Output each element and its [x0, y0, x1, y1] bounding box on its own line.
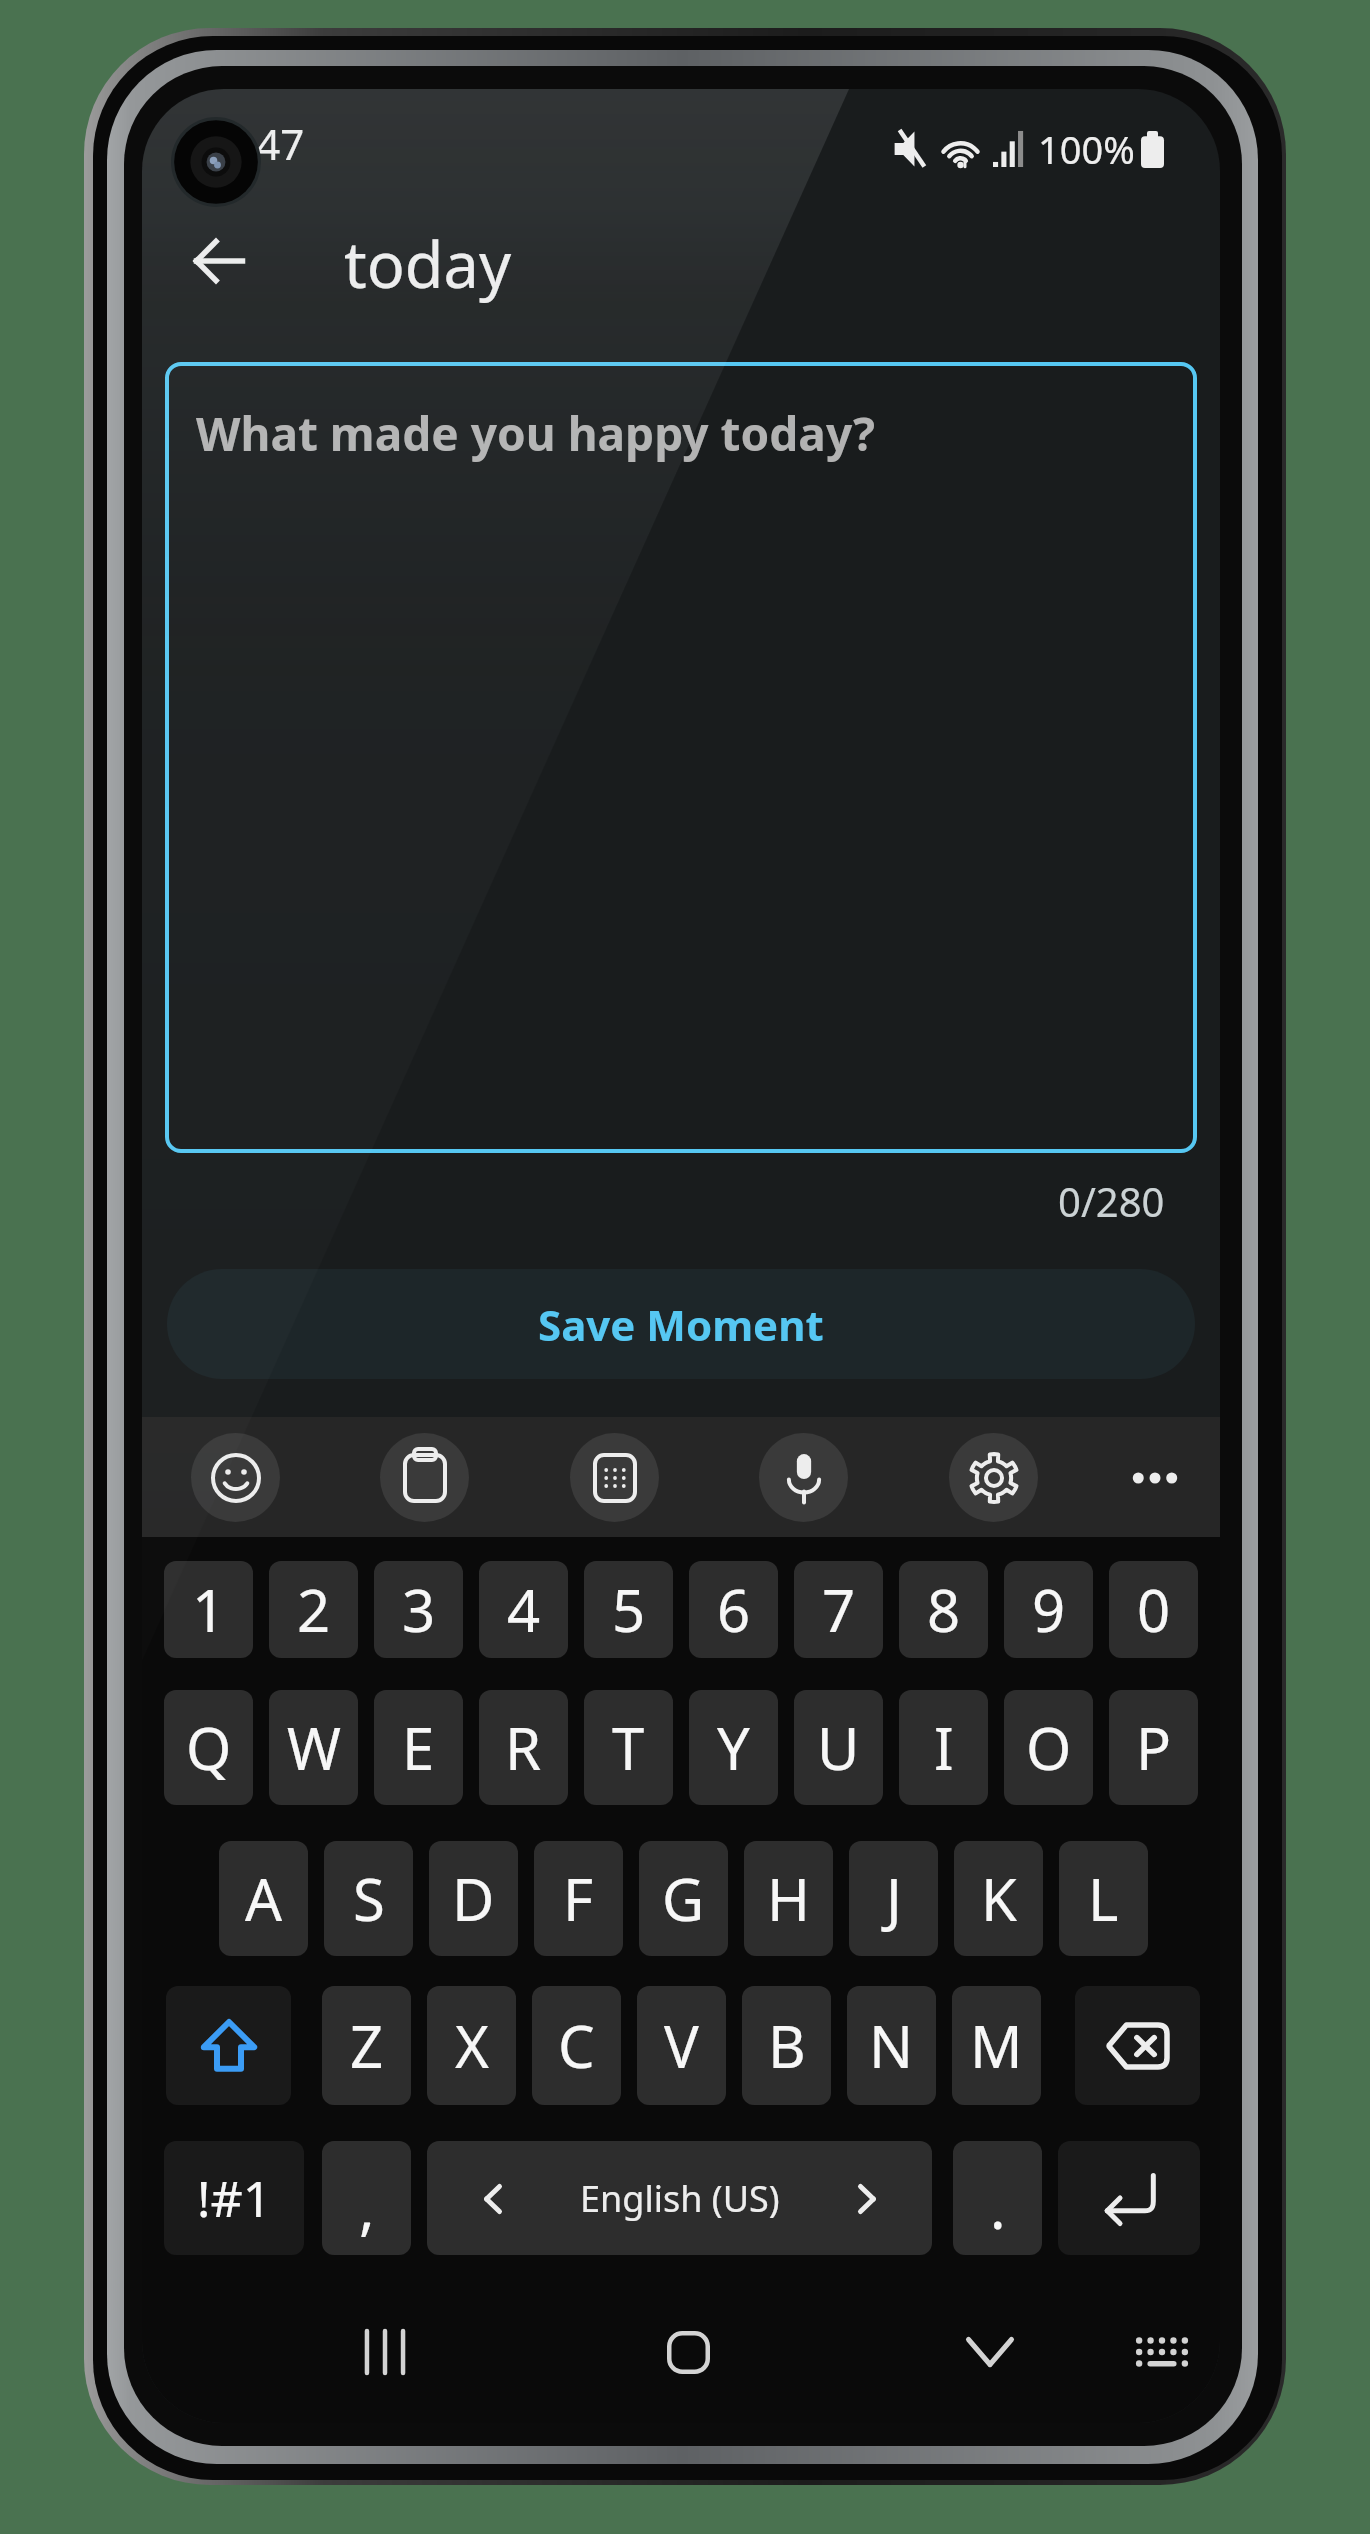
staticText: 4 — [507, 1570, 541, 1649]
staticText: . — [990, 2167, 1006, 2246]
button[interactable]: 0 — [1109, 1561, 1198, 1658]
button[interactable]: 1 — [164, 1561, 253, 1658]
staticText: , — [359, 2167, 375, 2246]
staticText: N — [869, 2006, 914, 2085]
staticText: U — [817, 1708, 860, 1787]
button[interactable]: V — [637, 1986, 726, 2105]
staticText: D — [452, 1859, 495, 1938]
button[interactable]: U — [794, 1690, 883, 1805]
staticText: 100% — [1038, 123, 1135, 175]
staticText: H — [767, 1859, 810, 1938]
button[interactable]: Backspace — [1075, 1986, 1200, 2105]
staticText: 6 — [717, 1570, 751, 1649]
button[interactable]: Clipboard — [380, 1433, 469, 1522]
button[interactable]: E — [374, 1690, 463, 1805]
button[interactable]: F — [534, 1841, 623, 1956]
button[interactable]: Save Moment — [167, 1269, 1195, 1379]
button[interactable]: More options — [1110, 1433, 1199, 1522]
staticText: English (US) — [580, 2174, 780, 2223]
button[interactable]: English (US) — [427, 2141, 932, 2255]
staticText: I — [934, 1708, 954, 1787]
button[interactable]: 9 — [1004, 1561, 1093, 1658]
button[interactable] — [165, 362, 1197, 1153]
button[interactable]: . — [953, 2141, 1042, 2255]
button[interactable]: S — [324, 1841, 413, 1956]
button[interactable]: A — [219, 1841, 308, 1956]
staticText: T — [612, 1708, 645, 1787]
staticText: 1 — [192, 1570, 226, 1649]
staticText: F — [563, 1859, 594, 1938]
button[interactable]: H — [744, 1841, 833, 1956]
staticText: :47 — [245, 115, 305, 172]
staticText: Z — [350, 2006, 384, 2085]
button[interactable]: Home — [643, 2307, 733, 2397]
staticText: L — [1088, 1859, 1119, 1938]
staticText: Save Moment — [538, 1296, 824, 1353]
staticText: J — [886, 1859, 902, 1938]
button[interactable]: I — [899, 1690, 988, 1805]
button[interactable]: Change keyboard — [1117, 2307, 1207, 2397]
staticText: today — [344, 221, 512, 307]
button[interactable]: Back — [171, 213, 267, 309]
staticText: G — [662, 1859, 705, 1938]
button[interactable]: N — [847, 1986, 936, 2105]
staticText: W — [287, 1708, 341, 1787]
staticText: 3 — [402, 1570, 436, 1649]
button[interactable]: 3 — [374, 1561, 463, 1658]
button[interactable]: Enter — [1058, 2141, 1200, 2255]
staticText: Y — [717, 1708, 750, 1787]
button[interactable]: T — [584, 1690, 673, 1805]
button[interactable]: 6 — [689, 1561, 778, 1658]
button[interactable]: R — [479, 1690, 568, 1805]
staticText: A — [245, 1859, 283, 1938]
staticText: 0 — [1137, 1570, 1171, 1649]
button[interactable]: Q — [164, 1690, 253, 1805]
staticText: 9 — [1032, 1570, 1066, 1649]
staticText: X — [455, 2006, 489, 2085]
button[interactable]: !#1 — [164, 2141, 304, 2255]
button[interactable]: Settings — [949, 1433, 1038, 1522]
staticText: O — [1026, 1708, 1072, 1787]
button[interactable]: B — [742, 1986, 831, 2105]
button[interactable]: W — [269, 1690, 358, 1805]
button[interactable]: X — [427, 1986, 516, 2105]
button[interactable]: Recents — [340, 2307, 430, 2397]
button[interactable]: G — [639, 1841, 728, 1956]
button[interactable]: O — [1004, 1690, 1093, 1805]
staticText: 8 — [927, 1570, 961, 1649]
staticText: 7 — [822, 1570, 856, 1649]
staticText: What made you happy today? — [196, 402, 876, 465]
button[interactable]: Emoji — [191, 1433, 280, 1522]
button[interactable]: D — [429, 1841, 518, 1956]
button[interactable]: J — [849, 1841, 938, 1956]
button[interactable]: 2 — [269, 1561, 358, 1658]
staticText: C — [558, 2006, 595, 2085]
staticText: B — [768, 2006, 806, 2085]
button[interactable]: 4 — [479, 1561, 568, 1658]
button[interactable]: Hide keyboard — [945, 2307, 1035, 2397]
staticText: 2 — [297, 1570, 331, 1649]
button[interactable]: 8 — [899, 1561, 988, 1658]
staticText: R — [505, 1708, 542, 1787]
button[interactable]: , — [322, 2141, 411, 2255]
button[interactable]: Shift — [166, 1986, 291, 2105]
button[interactable]: P — [1109, 1690, 1198, 1805]
staticText: E — [402, 1708, 435, 1787]
staticText: 5 — [612, 1570, 646, 1649]
staticText: K — [981, 1859, 1017, 1938]
button[interactable]: Y — [689, 1690, 778, 1805]
button[interactable]: M — [952, 1986, 1041, 2105]
staticText: M — [970, 2006, 1023, 2085]
button[interactable]: 7 — [794, 1561, 883, 1658]
staticText: 0/280 — [1058, 1174, 1165, 1228]
button[interactable]: L — [1059, 1841, 1148, 1956]
staticText: V — [664, 2006, 699, 2085]
button[interactable]: K — [954, 1841, 1043, 1956]
button[interactable]: 5 — [584, 1561, 673, 1658]
staticText: !#1 — [197, 2164, 272, 2232]
button[interactable]: Z — [322, 1986, 411, 2105]
button[interactable]: C — [532, 1986, 621, 2105]
button[interactable]: Stickers — [570, 1433, 659, 1522]
staticText: P — [1136, 1708, 1172, 1787]
button[interactable]: Voice input — [759, 1433, 848, 1522]
